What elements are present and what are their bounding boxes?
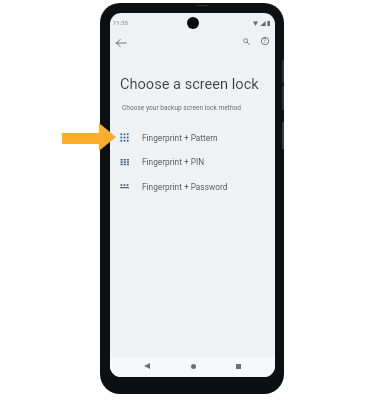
staticText: Choose your backup screen lock method bbox=[122, 104, 242, 112]
staticText: Fingerprint + Pattern bbox=[142, 133, 218, 143]
button[interactable]: Fingerprint + PIN bbox=[110, 150, 275, 174]
staticText: Fingerprint + Password bbox=[142, 182, 228, 192]
staticText: ? bbox=[263, 37, 267, 45]
button[interactable]: Search bbox=[238, 33, 254, 49]
button[interactable]: Home bbox=[185, 358, 201, 374]
button[interactable]: Fingerprint + Password bbox=[110, 175, 275, 199]
button[interactable]: Back bbox=[111, 33, 131, 53]
button[interactable]: Back bbox=[139, 358, 155, 374]
button[interactable]: Recent apps bbox=[230, 358, 246, 374]
staticText: Fingerprint + PIN bbox=[142, 157, 205, 167]
button[interactable]: Help bbox=[257, 33, 273, 49]
staticText: Choose a screen lock bbox=[120, 75, 259, 92]
staticText: 11:35 bbox=[113, 19, 128, 26]
button[interactable]: Fingerprint + Pattern bbox=[110, 126, 275, 150]
